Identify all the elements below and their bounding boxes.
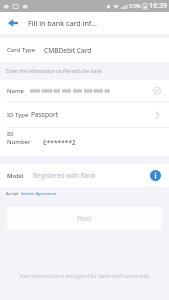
button[interactable]: Service Agreement — [21, 191, 57, 196]
button[interactable]: Back — [4, 14, 22, 32]
button[interactable]: Clear text — [150, 84, 163, 97]
button[interactable]: Name — [0, 80, 169, 101]
button[interactable]: ID Type — [0, 102, 169, 127]
staticText: Fill in bank card inf... — [28, 18, 97, 28]
button[interactable]: Card Type — [0, 38, 169, 62]
staticText: Next — [77, 214, 92, 223]
other: Choose ID type — [150, 108, 163, 121]
staticText: CMBDebit Card — [44, 46, 92, 55]
staticText: Card Type — [7, 46, 36, 54]
staticText: E*******2 — [43, 138, 76, 147]
staticText: 53% — [129, 2, 141, 10]
staticText: 16:39 — [149, 1, 167, 11]
button[interactable]: Mobil — [0, 164, 169, 187]
button[interactable]: Next — [7, 207, 162, 229]
staticText: Enter the information on file with the b… — [6, 68, 102, 75]
staticText: Your information is encrypted for bank v… — [0, 273, 169, 280]
staticText: Name — [7, 87, 24, 95]
staticText: Registered with Bank — [33, 171, 96, 180]
button[interactable]: Information — [149, 169, 162, 182]
staticText: Passport — [31, 110, 59, 119]
staticText: Mobil — [7, 172, 24, 180]
button[interactable]: ID Number — [0, 128, 169, 156]
staticText: Accept — [6, 191, 19, 196]
staticText: ID Number — [7, 130, 31, 146]
staticText: ID Type — [7, 111, 29, 119]
